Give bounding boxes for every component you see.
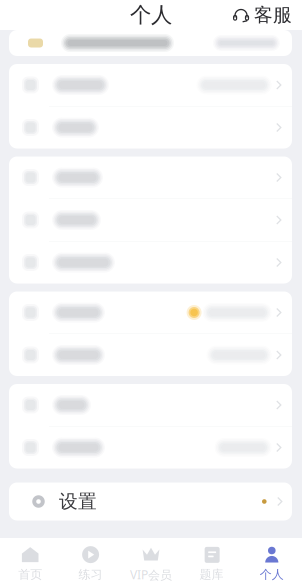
button[interactable] xyxy=(9,106,292,148)
button[interactable] xyxy=(9,30,292,56)
button[interactable]: 个人 xyxy=(242,540,302,582)
staticText: 题库 xyxy=(199,567,223,582)
button[interactable]: 练习 xyxy=(60,540,121,582)
staticText: 首页 xyxy=(18,567,42,582)
button[interactable] xyxy=(9,334,292,376)
button[interactable]: 客服 xyxy=(227,0,298,29)
button[interactable]: VIP会员 xyxy=(121,539,181,582)
button[interactable]: 首页 xyxy=(0,540,60,582)
button[interactable]: 设置 xyxy=(9,482,292,520)
staticText: 练习 xyxy=(79,567,103,582)
button[interactable] xyxy=(9,64,292,106)
button[interactable] xyxy=(9,384,292,426)
staticText: 个人 xyxy=(130,2,172,28)
button[interactable] xyxy=(9,156,292,198)
button[interactable] xyxy=(9,199,292,241)
staticText: VIP会员 xyxy=(130,566,172,582)
button[interactable]: 题库 xyxy=(181,540,242,582)
staticText: 客服 xyxy=(254,3,292,26)
button[interactable] xyxy=(9,291,292,333)
staticText: 个人 xyxy=(260,567,284,582)
button[interactable] xyxy=(9,241,292,283)
button[interactable] xyxy=(9,426,292,468)
staticText: 设置 xyxy=(59,490,97,513)
